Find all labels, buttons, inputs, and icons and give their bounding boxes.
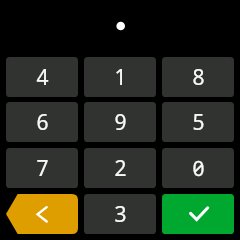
- staticText: 8: [192, 63, 205, 92]
- button[interactable]: Confirm: [162, 194, 234, 234]
- button[interactable]: 3: [84, 194, 156, 234]
- button[interactable]: 4: [6, 57, 78, 97]
- button[interactable]: 1: [84, 57, 156, 97]
- button[interactable]: 8: [162, 57, 234, 97]
- staticText: 6: [36, 108, 49, 137]
- button[interactable]: 5: [162, 102, 234, 142]
- staticText: 9: [114, 108, 127, 137]
- staticText: 0: [192, 154, 205, 183]
- button[interactable]: 6: [6, 102, 78, 142]
- staticText: 1: [114, 63, 127, 92]
- staticText: 2: [114, 154, 127, 183]
- staticText: 7: [36, 154, 49, 183]
- button[interactable]: 2: [84, 148, 156, 188]
- button[interactable]: 0: [162, 148, 234, 188]
- button[interactable]: 7: [6, 148, 78, 188]
- button[interactable]: 9: [84, 102, 156, 142]
- staticText: 4: [36, 63, 49, 92]
- staticText: 3: [114, 200, 127, 229]
- button[interactable]: Backspace: [6, 194, 78, 234]
- staticText: 5: [192, 108, 205, 137]
